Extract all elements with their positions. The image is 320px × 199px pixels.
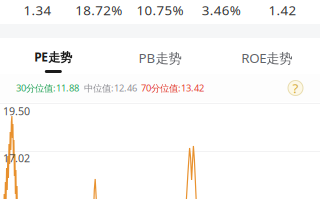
button[interactable]: PE走势 (0, 38, 107, 74)
staticText: PE走势 (34, 49, 72, 65)
staticText: 70分位值:13.42 (141, 82, 204, 94)
staticText: PB走势 (138, 49, 181, 67)
button[interactable]: PB走势 (107, 38, 213, 74)
staticText: 30分位值:11.88 (16, 82, 79, 94)
button[interactable]: 指标说明 (288, 80, 303, 95)
staticText: 1.34 (24, 1, 52, 19)
staticText: 3.46% (202, 1, 241, 19)
staticText: 18.72% (75, 1, 122, 19)
staticText: ? (292, 79, 298, 97)
button[interactable]: ROE走势 (213, 38, 320, 74)
staticText: 17.02 (3, 151, 30, 165)
staticText: 1.42 (268, 1, 296, 19)
staticText: 中位值:12.46 (84, 82, 137, 94)
staticText: 19.50 (3, 104, 30, 118)
staticText: ROE走势 (241, 49, 292, 67)
staticText: 10.75% (136, 1, 183, 19)
